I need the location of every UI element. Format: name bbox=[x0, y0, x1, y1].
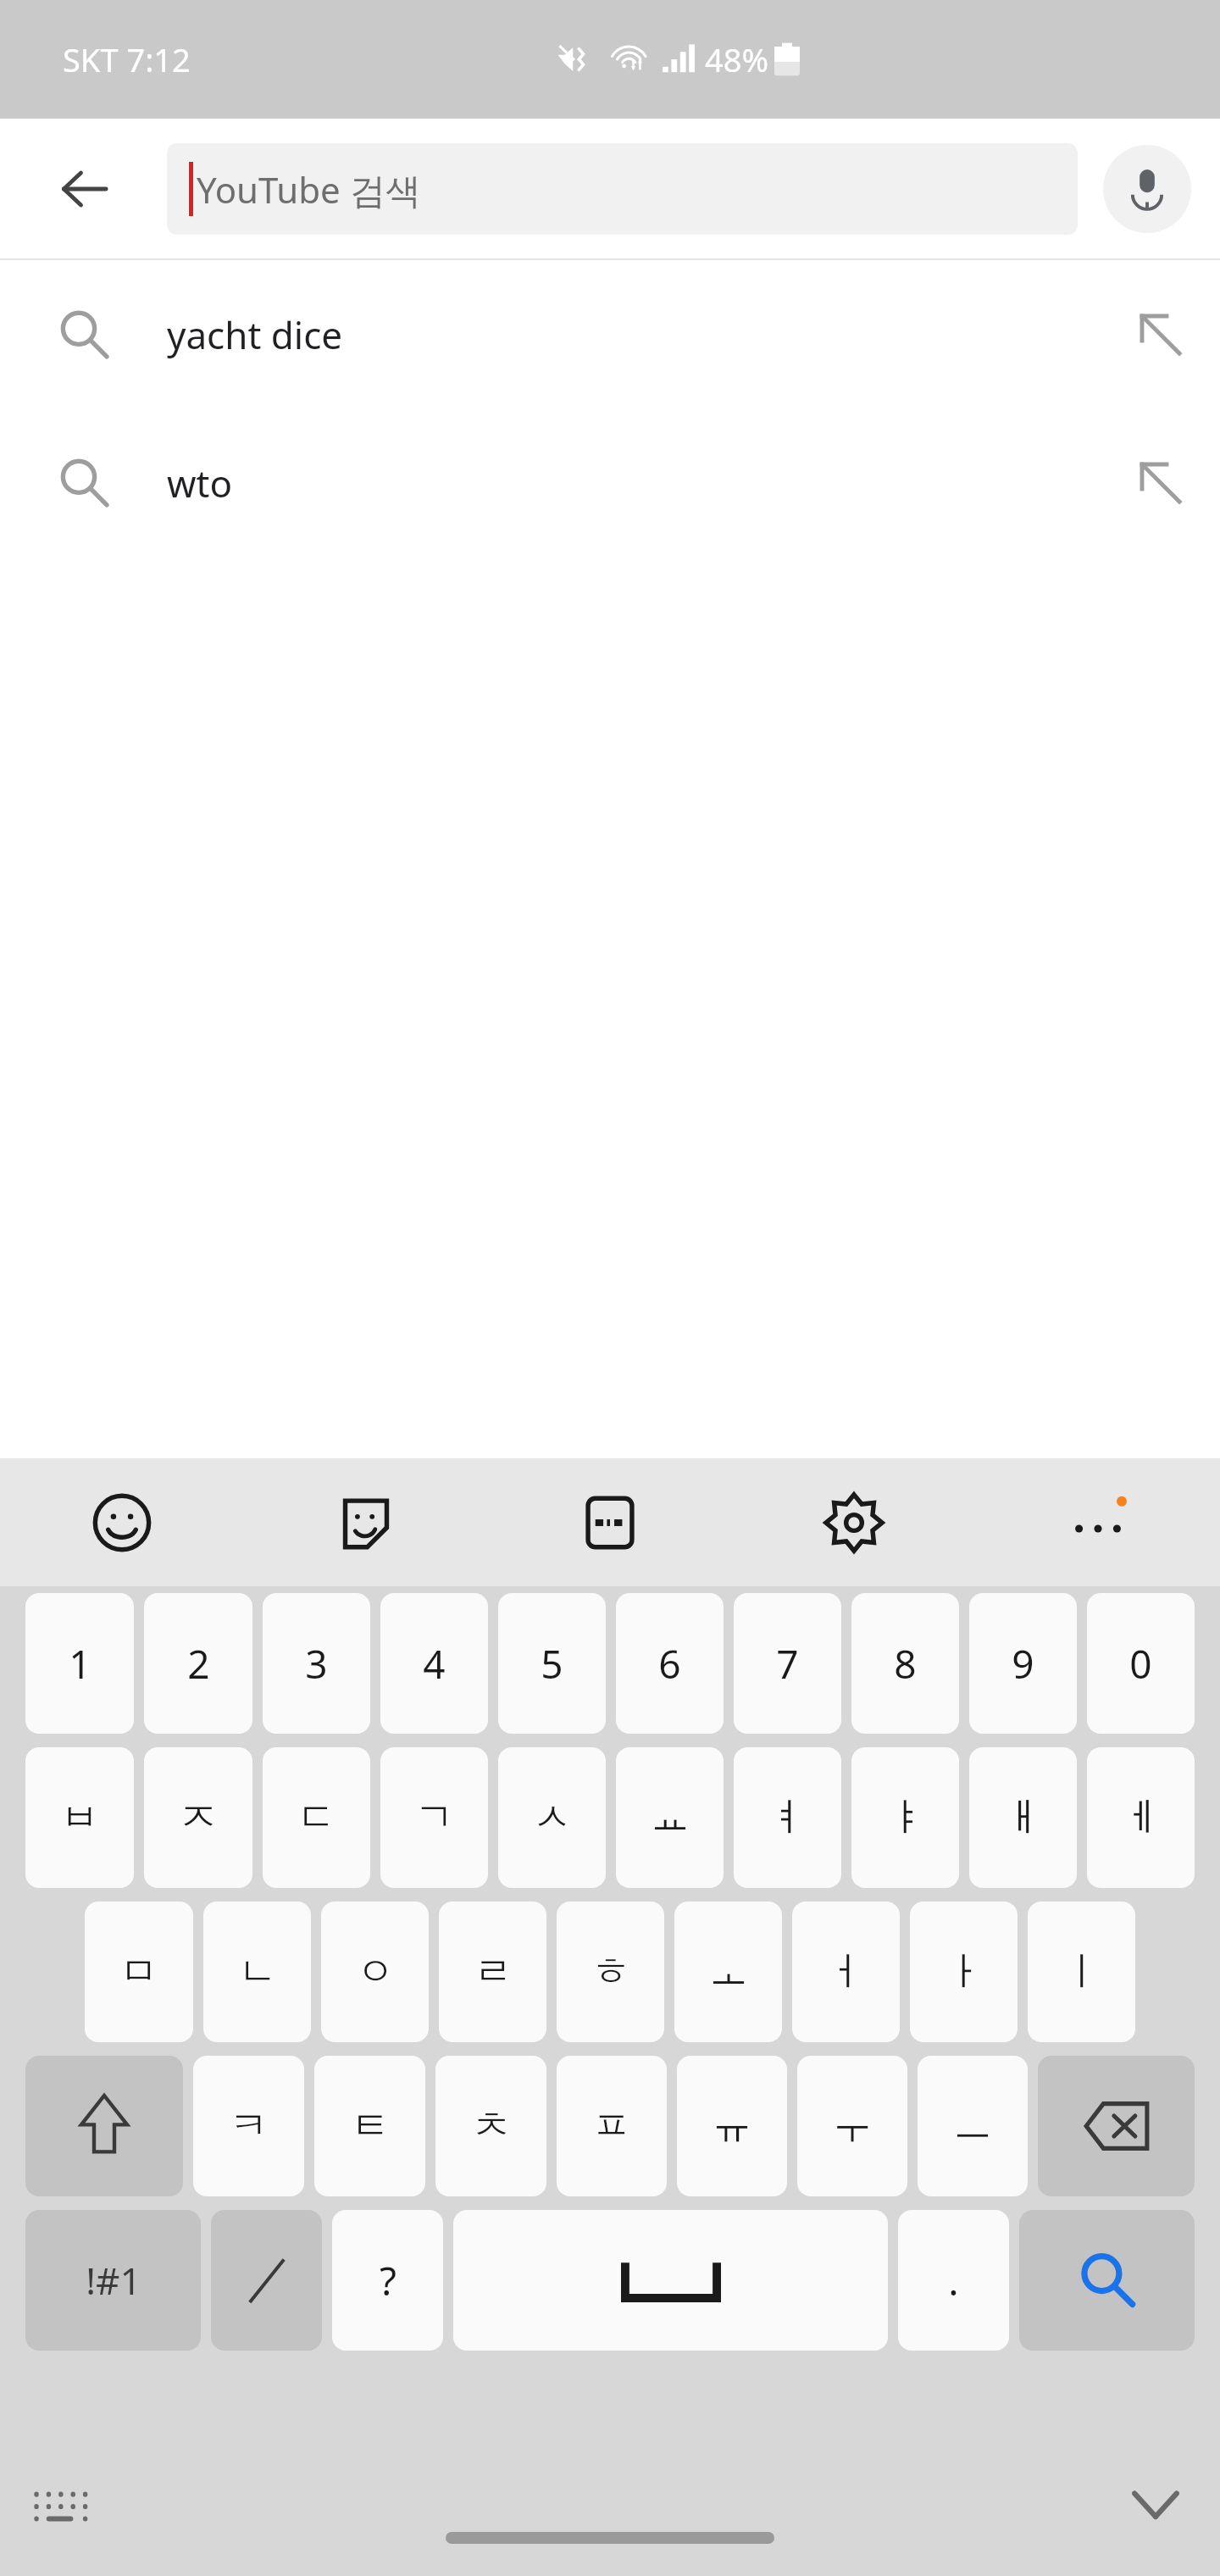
button[interactable]: 0 bbox=[1087, 1593, 1195, 1734]
staticText: YouTube 검색 bbox=[197, 165, 421, 214]
button[interactable]: ㅛ bbox=[616, 1747, 724, 1888]
button[interactable]: Insert suggestion bbox=[1101, 260, 1220, 408]
button[interactable]: Hide keyboard bbox=[1113, 2462, 1198, 2546]
button[interactable]: Space bbox=[453, 2210, 888, 2351]
staticText: ㅡ bbox=[953, 2101, 992, 2151]
staticText: ㅐ bbox=[1004, 1793, 1043, 1842]
button[interactable]: ㅏ bbox=[910, 1901, 1018, 2042]
button[interactable]: Settings bbox=[807, 1476, 901, 1569]
staticText: ㅛ bbox=[651, 1793, 690, 1842]
button[interactable]: ㅑ bbox=[851, 1747, 959, 1888]
staticText: ㅍ bbox=[592, 2101, 631, 2151]
button[interactable]: 5 bbox=[498, 1593, 606, 1734]
staticText: ㅗ bbox=[709, 1947, 748, 1996]
button[interactable]: Emoji bbox=[75, 1476, 169, 1569]
staticText: ㅁ bbox=[119, 1947, 158, 1996]
button[interactable]: 8 bbox=[851, 1593, 959, 1734]
staticText: ㅅ bbox=[533, 1793, 572, 1842]
button[interactable]: 4 bbox=[380, 1593, 488, 1734]
button[interactable]: More options bbox=[1051, 1476, 1145, 1569]
button[interactable]: Shift bbox=[25, 2056, 183, 2196]
button[interactable]: ㅣ bbox=[1028, 1901, 1135, 2042]
staticText: 0 bbox=[1129, 1637, 1152, 1690]
button[interactable]: ㄹ bbox=[439, 1901, 546, 2042]
staticText: . bbox=[948, 2254, 959, 2307]
button[interactable]: Voice search bbox=[1103, 145, 1191, 233]
staticText: wto bbox=[167, 458, 1101, 508]
button[interactable]: ? bbox=[332, 2210, 443, 2351]
staticText: 48% bbox=[705, 37, 769, 81]
button[interactable]: ㅍ bbox=[557, 2056, 667, 2196]
button[interactable]: Back bbox=[37, 142, 132, 236]
staticText: ㅜ bbox=[833, 2101, 872, 2151]
button[interactable]: ㅗ bbox=[674, 1901, 782, 2042]
staticText: ㅕ bbox=[768, 1793, 807, 1842]
button[interactable]: ㅓ bbox=[792, 1901, 900, 2042]
staticText: ㄹ bbox=[474, 1947, 513, 1996]
button[interactable]: ㅔ bbox=[1087, 1747, 1195, 1888]
staticText: 4 bbox=[423, 1637, 446, 1690]
button[interactable]: wto bbox=[0, 408, 1220, 557]
button[interactable]: Keyboard layout bbox=[19, 2462, 103, 2546]
staticText: 9 bbox=[1012, 1637, 1034, 1690]
staticText: ㅓ bbox=[827, 1947, 866, 1996]
staticText: ? bbox=[380, 2254, 396, 2307]
staticText: 1 bbox=[69, 1637, 91, 1690]
staticText: ㅔ bbox=[1122, 1793, 1161, 1842]
button[interactable]: GIF bbox=[563, 1476, 657, 1569]
button[interactable]: ㅌ bbox=[314, 2056, 425, 2196]
staticText: 2 bbox=[187, 1637, 210, 1690]
button[interactable]: ㅊ bbox=[435, 2056, 546, 2196]
staticText: ㅣ bbox=[1062, 1947, 1101, 1996]
button[interactable]: ㅂ bbox=[25, 1747, 134, 1888]
button[interactable]: !#1 bbox=[25, 2210, 201, 2351]
button[interactable]: YouTube 검색 bbox=[167, 143, 1078, 235]
staticText: yacht dice bbox=[167, 309, 1101, 360]
staticText: SKT 7:12 bbox=[63, 37, 191, 81]
staticText: ㅑ bbox=[886, 1793, 925, 1842]
button[interactable]: Stickers bbox=[319, 1476, 413, 1569]
staticText: ㅇ bbox=[356, 1947, 395, 1996]
button[interactable]: Search bbox=[1019, 2210, 1195, 2351]
button[interactable]: ㅠ bbox=[677, 2056, 787, 2196]
button[interactable]: Backspace bbox=[1038, 2056, 1195, 2196]
staticText: ㄷ bbox=[297, 1793, 336, 1842]
button[interactable]: ㄴ bbox=[203, 1901, 311, 2042]
staticText: 7 bbox=[776, 1637, 799, 1690]
button[interactable]: ㅅ bbox=[498, 1747, 606, 1888]
staticText: 3 bbox=[305, 1637, 328, 1690]
staticText: ㄴ bbox=[238, 1947, 277, 1996]
button[interactable]: ㅎ bbox=[557, 1901, 664, 2042]
button[interactable]: 2 bbox=[144, 1593, 252, 1734]
button[interactable]: ㅁ bbox=[85, 1901, 193, 2042]
staticText: !#1 bbox=[86, 2255, 141, 2306]
staticText: ㅎ bbox=[591, 1947, 630, 1996]
staticText: ㅈ bbox=[179, 1793, 218, 1842]
staticText: ㅠ bbox=[713, 2101, 751, 2151]
button[interactable]: ㄱ bbox=[380, 1747, 488, 1888]
button[interactable]: 3 bbox=[263, 1593, 370, 1734]
button[interactable]: 7 bbox=[734, 1593, 841, 1734]
staticText: ㄱ bbox=[415, 1793, 454, 1842]
button[interactable]: 1 bbox=[25, 1593, 134, 1734]
button[interactable]: Korean English toggle bbox=[211, 2210, 322, 2351]
staticText: ㅌ bbox=[351, 2101, 390, 2151]
button[interactable]: 9 bbox=[969, 1593, 1077, 1734]
button[interactable]: ㅜ bbox=[797, 2056, 907, 2196]
staticText: 6 bbox=[658, 1637, 681, 1690]
button[interactable]: ㅐ bbox=[969, 1747, 1077, 1888]
button[interactable]: 6 bbox=[616, 1593, 724, 1734]
button[interactable]: ㅈ bbox=[144, 1747, 252, 1888]
button[interactable]: ㄷ bbox=[263, 1747, 370, 1888]
button[interactable]: ㅕ bbox=[734, 1747, 841, 1888]
button[interactable]: Insert suggestion bbox=[1101, 408, 1220, 557]
button[interactable]: . bbox=[898, 2210, 1009, 2351]
button[interactable]: ㅡ bbox=[918, 2056, 1028, 2196]
button[interactable]: yacht dice bbox=[0, 260, 1220, 408]
staticText: 5 bbox=[541, 1637, 563, 1690]
staticText: ㅊ bbox=[472, 2101, 511, 2151]
button[interactable]: ㅋ bbox=[193, 2056, 304, 2196]
staticText: 8 bbox=[894, 1637, 917, 1690]
staticText: ㅂ bbox=[60, 1793, 99, 1842]
button[interactable]: ㅇ bbox=[321, 1901, 429, 2042]
